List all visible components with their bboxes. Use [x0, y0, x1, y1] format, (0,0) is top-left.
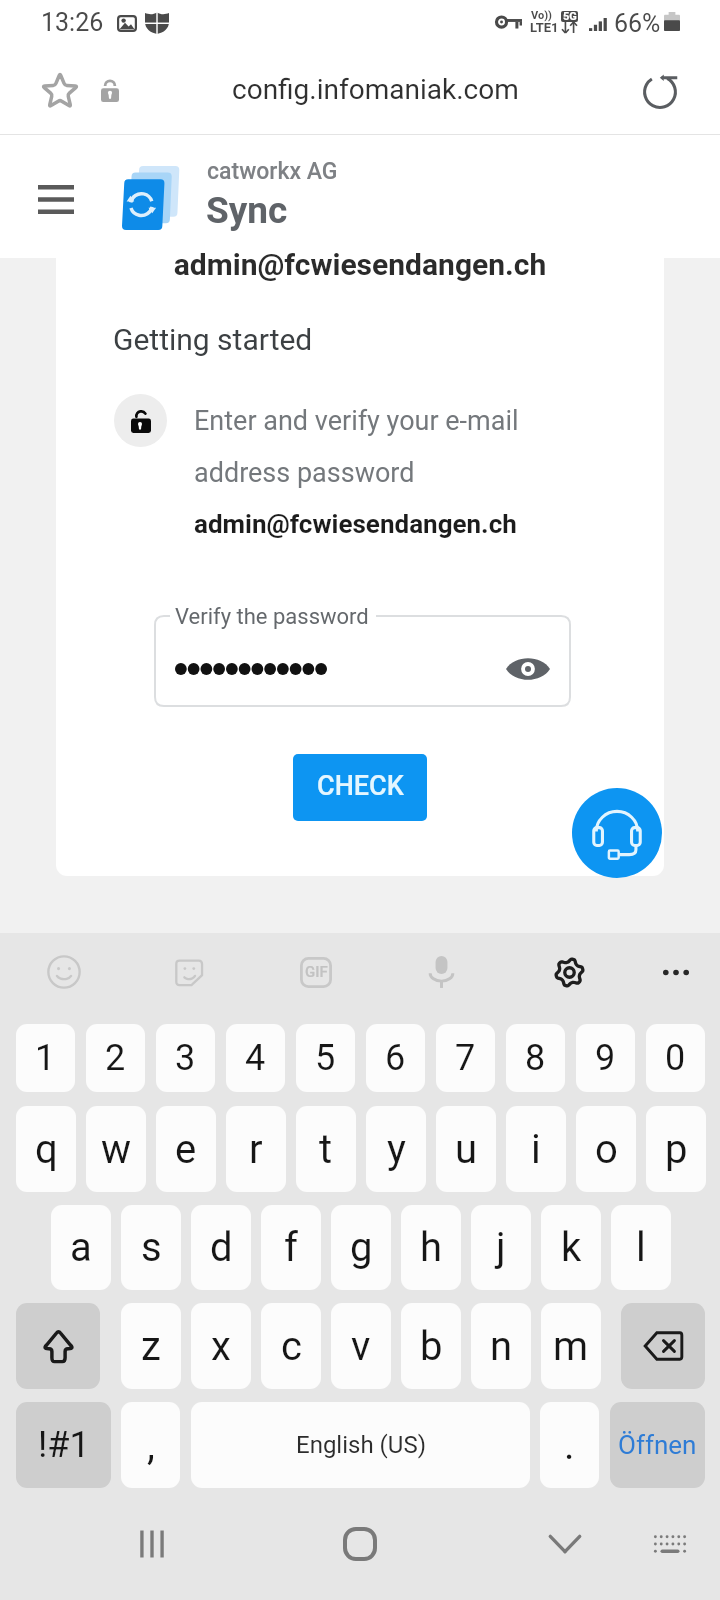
- staticText: x: [211, 1323, 231, 1370]
- staticText: 13:26: [41, 8, 104, 37]
- button[interactable]: k: [541, 1205, 601, 1290]
- button[interactable]: q: [16, 1106, 76, 1192]
- button[interactable]: s: [121, 1205, 181, 1290]
- button[interactable]: Change keyboard: [640, 1514, 700, 1574]
- staticText: k: [561, 1224, 582, 1271]
- button[interactable]: 7: [436, 1024, 495, 1092]
- button[interactable]: 0: [646, 1024, 705, 1092]
- staticText: Sync: [206, 189, 288, 232]
- button[interactable]: Öffnen: [610, 1402, 705, 1488]
- button[interactable]: u: [436, 1106, 496, 1192]
- button[interactable]: !#1: [16, 1402, 111, 1488]
- staticText: z: [141, 1323, 161, 1370]
- button[interactable]: j: [471, 1205, 531, 1290]
- button[interactable]: v: [331, 1303, 391, 1389]
- staticText: p: [665, 1126, 688, 1173]
- button[interactable]: Bookmark: [32, 62, 88, 118]
- staticText: a: [70, 1224, 92, 1271]
- button[interactable]: Site security: [87, 68, 132, 113]
- button[interactable]: r: [226, 1106, 286, 1192]
- staticText: 66%: [614, 9, 661, 38]
- staticText: o: [595, 1126, 618, 1173]
- staticText: r: [249, 1126, 263, 1173]
- staticText: 5G: [563, 10, 577, 21]
- button[interactable]: 1: [16, 1024, 75, 1092]
- button[interactable]: n: [471, 1303, 531, 1389]
- staticText: Öffnen: [618, 1430, 697, 1460]
- staticText: CHECK: [317, 770, 404, 802]
- staticText: q: [35, 1126, 58, 1173]
- staticText: admin@fcwiesendangen.ch: [194, 509, 517, 539]
- staticText: u: [455, 1126, 478, 1173]
- staticText: !#1: [38, 1424, 90, 1466]
- staticText: ,: [147, 1422, 155, 1469]
- staticText: Verify the password: [175, 604, 369, 630]
- button[interactable]: Voice input: [405, 936, 477, 1008]
- button[interactable]: Recents: [122, 1514, 182, 1574]
- staticText: Enter and verify your e-mail: [194, 405, 519, 437]
- button[interactable]: 9: [576, 1024, 635, 1092]
- button[interactable]: e: [156, 1106, 216, 1192]
- button[interactable]: m: [541, 1303, 601, 1389]
- staticText: 9: [595, 1037, 616, 1079]
- staticText: j: [496, 1224, 506, 1271]
- button[interactable]: Home: [330, 1514, 390, 1574]
- button[interactable]: 8: [506, 1024, 565, 1092]
- staticText: LTE1: [530, 20, 559, 35]
- button[interactable]: o: [576, 1106, 636, 1192]
- staticText: catworkx AG: [207, 158, 338, 185]
- button[interactable]: [16, 1303, 100, 1389]
- button[interactable]: Menu: [28, 171, 84, 227]
- staticText: 6: [385, 1037, 406, 1079]
- button[interactable]: Settings: [533, 936, 605, 1008]
- button[interactable]: English (US): [191, 1402, 530, 1488]
- button[interactable]: [621, 1303, 705, 1389]
- staticText: t: [319, 1126, 333, 1173]
- button[interactable]: .: [540, 1402, 599, 1488]
- button[interactable]: Hide keyboard: [535, 1514, 595, 1574]
- staticText: e: [175, 1126, 197, 1173]
- button[interactable]: b: [401, 1303, 461, 1389]
- button[interactable]: 5: [296, 1024, 355, 1092]
- staticText: 1: [35, 1037, 56, 1079]
- staticText: i: [531, 1126, 541, 1173]
- button[interactable]: Emoji: [28, 936, 100, 1008]
- button[interactable]: g: [331, 1205, 391, 1290]
- staticText: d: [210, 1224, 233, 1271]
- button[interactable]: CHECK: [293, 754, 427, 821]
- staticText: admin@fcwiesendangen.ch: [56, 247, 664, 282]
- button[interactable]: GIF: [280, 936, 352, 1008]
- button[interactable]: z: [121, 1303, 181, 1389]
- staticText: h: [420, 1224, 443, 1271]
- button[interactable]: 2: [86, 1024, 145, 1092]
- button[interactable]: More options: [640, 936, 712, 1008]
- button[interactable]: i: [506, 1106, 566, 1192]
- button[interactable]: Show password: [500, 641, 556, 697]
- button[interactable]: c: [261, 1303, 321, 1389]
- button[interactable]: ,: [121, 1402, 180, 1488]
- button[interactable]: 6: [366, 1024, 425, 1092]
- staticText: l: [636, 1224, 646, 1271]
- button[interactable]: Support: [572, 788, 662, 878]
- staticText: 7: [455, 1037, 476, 1079]
- button[interactable]: d: [191, 1205, 251, 1290]
- button[interactable]: h: [401, 1205, 461, 1290]
- staticText: Getting started: [113, 322, 313, 357]
- button[interactable]: x: [191, 1303, 251, 1389]
- button[interactable]: y: [366, 1106, 426, 1192]
- staticText: 5: [315, 1037, 336, 1079]
- button[interactable]: Reload: [628, 60, 692, 124]
- button[interactable]: w: [86, 1106, 146, 1192]
- button[interactable]: p: [646, 1106, 706, 1192]
- staticText: w: [101, 1126, 132, 1173]
- button[interactable]: t: [296, 1106, 356, 1192]
- button[interactable]: Stickers: [153, 936, 225, 1008]
- button[interactable]: l: [611, 1205, 671, 1290]
- button[interactable]: 3: [156, 1024, 215, 1092]
- button[interactable]: a: [51, 1205, 111, 1290]
- staticText: 2: [105, 1037, 126, 1079]
- staticText: English (US): [296, 1431, 426, 1459]
- button[interactable]: 4: [226, 1024, 285, 1092]
- staticText: b: [420, 1323, 443, 1370]
- button[interactable]: f: [261, 1205, 321, 1290]
